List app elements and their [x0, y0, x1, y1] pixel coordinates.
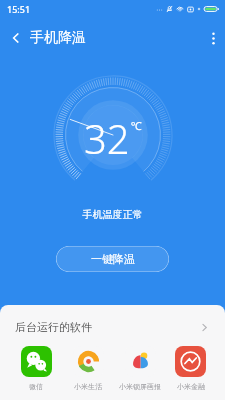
- staticText: 小米锁屏画报: [119, 382, 161, 391]
- staticText: 15:51: [7, 3, 31, 15]
- button[interactable]: 小米金融: [166, 345, 215, 392]
- staticText: ℃: [131, 118, 142, 133]
- button[interactable]: 小米生活: [62, 345, 114, 392]
- staticText: 小米金融: [177, 382, 205, 391]
- button[interactable]: More options: [202, 24, 225, 53]
- button[interactable]: 小米锁屏画报: [114, 345, 166, 392]
- staticText: 32: [84, 111, 130, 165]
- button[interactable]: 后台运行的软件: [0, 318, 225, 336]
- staticText: 微信: [29, 382, 43, 391]
- button[interactable]: 一键降温: [56, 246, 169, 272]
- other: More: [199, 322, 210, 333]
- staticText: 手机降温: [30, 29, 86, 47]
- staticText: 一键降温: [91, 252, 135, 266]
- button[interactable]: 微信: [10, 345, 62, 392]
- staticText: 手机温度正常: [0, 208, 225, 221]
- staticText: 后台运行的软件: [15, 320, 92, 334]
- button[interactable]: Back: [0, 23, 92, 53]
- staticText: 小米生活: [74, 382, 102, 391]
